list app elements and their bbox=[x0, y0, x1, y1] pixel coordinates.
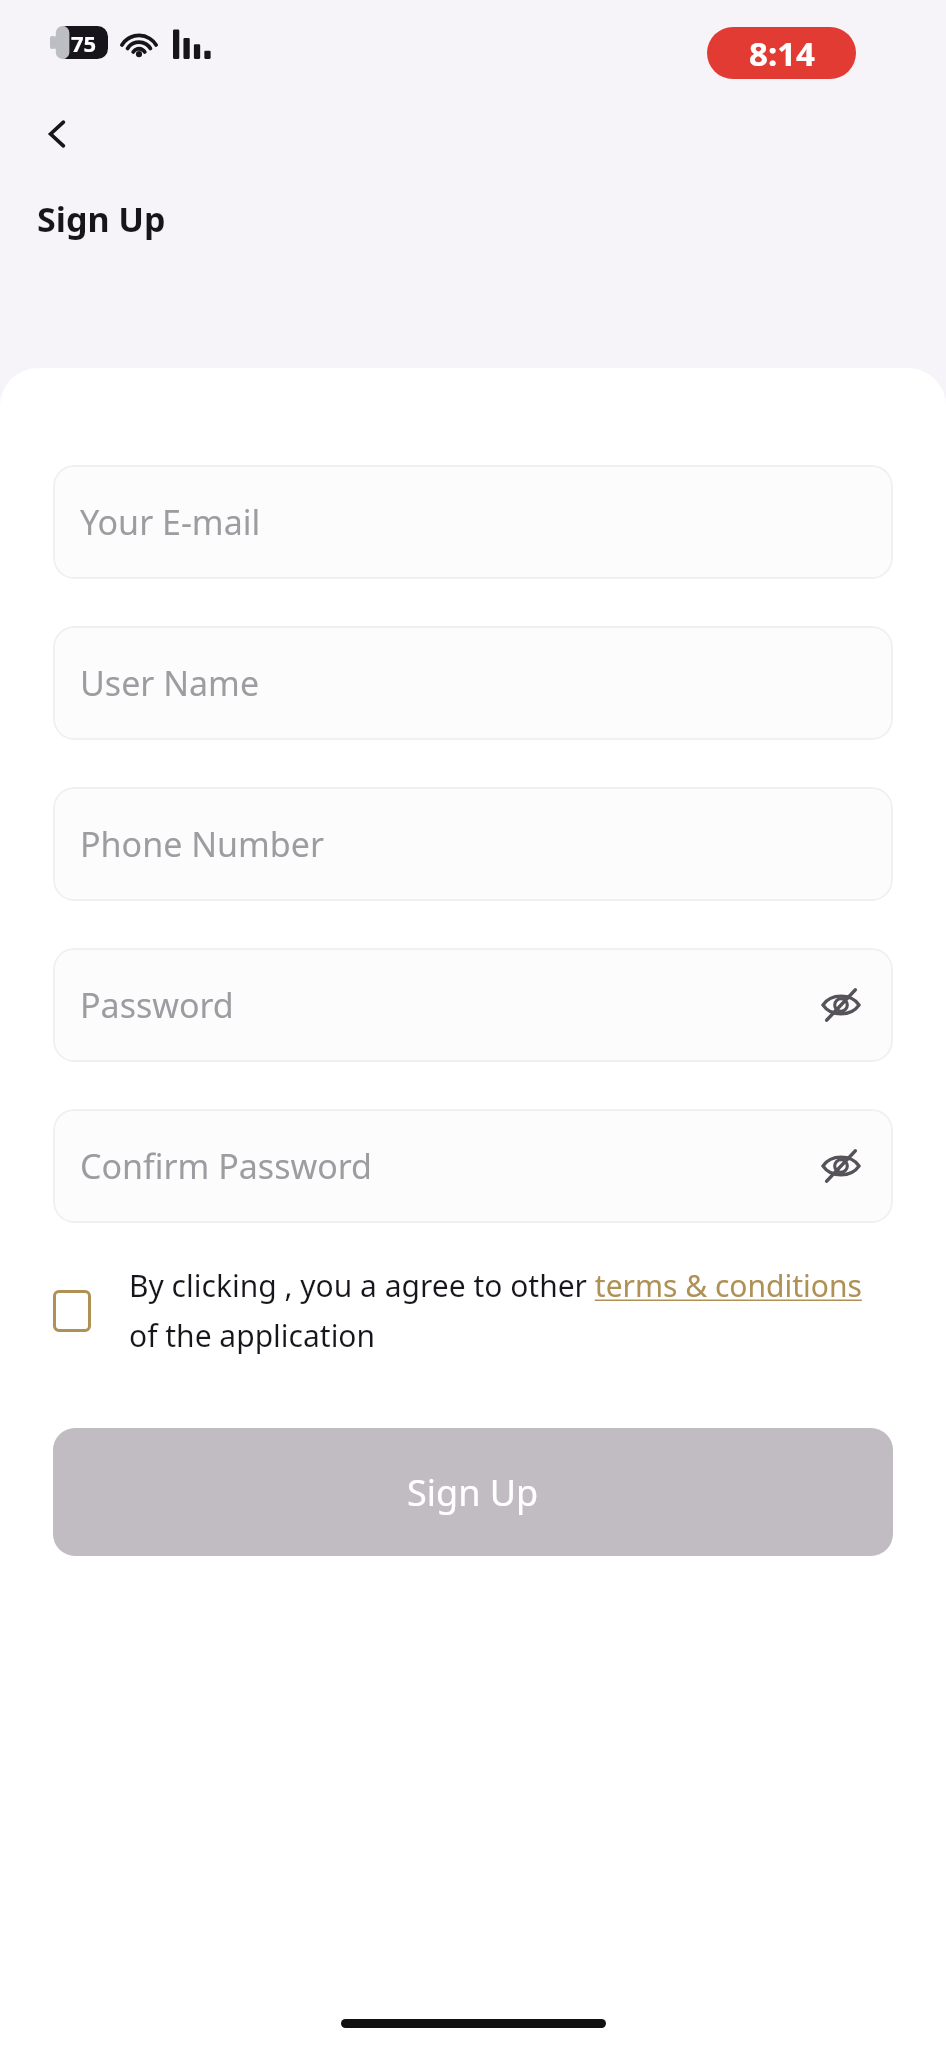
staticText: Sign Up bbox=[407, 1468, 539, 1517]
button[interactable]: Your E-mail bbox=[53, 465, 893, 579]
staticText: Password bbox=[80, 982, 813, 1028]
staticText: 8:14 bbox=[749, 31, 815, 76]
button[interactable]: Confirm Password bbox=[53, 1109, 893, 1223]
staticText: Sign Up bbox=[37, 196, 166, 242]
button[interactable]: Phone Number bbox=[53, 787, 893, 901]
staticText: Phone Number bbox=[80, 821, 869, 867]
staticText: By clicking , you a agree to other terms… bbox=[129, 1265, 886, 1356]
button[interactable]: Sign Up bbox=[53, 1428, 893, 1556]
staticText: User Name bbox=[80, 660, 869, 706]
button[interactable]: Password bbox=[53, 948, 893, 1062]
staticText: Your E-mail bbox=[80, 499, 869, 545]
button[interactable]: By clicking , you a agree to other terms… bbox=[53, 1265, 886, 1356]
button[interactable]: Toggle password visibility bbox=[813, 1138, 869, 1194]
staticText: Confirm Password bbox=[80, 1143, 813, 1189]
button[interactable]: Toggle password visibility bbox=[813, 977, 869, 1033]
staticText: 75 bbox=[71, 28, 97, 58]
button[interactable]: User Name bbox=[53, 626, 893, 740]
button[interactable]: Back bbox=[28, 105, 86, 163]
